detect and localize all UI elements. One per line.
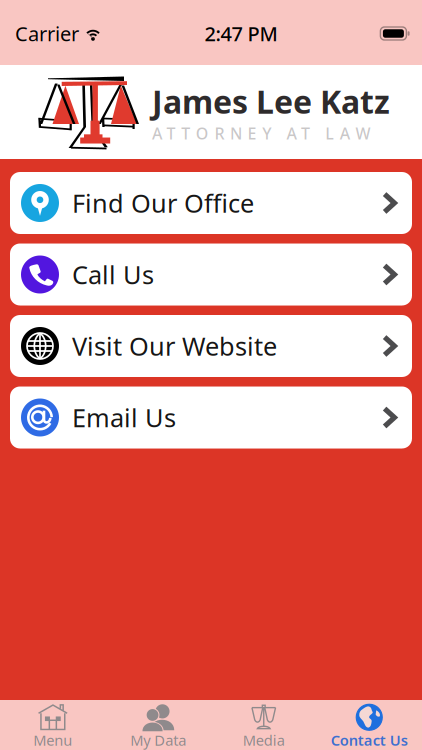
staticText: My Data	[130, 730, 186, 750]
staticText: Media	[243, 730, 285, 750]
staticText: James Lee Katz	[152, 80, 390, 123]
button[interactable]: Contact Us	[316, 700, 422, 750]
button[interactable]: Visit Our Website	[10, 315, 412, 377]
button[interactable]: Email Us	[10, 386, 412, 448]
staticText: Menu	[33, 730, 72, 750]
staticText: Visit Our Website	[72, 329, 277, 363]
button[interactable]: Call Us	[10, 243, 412, 305]
staticText: 2:47 PM	[204, 20, 277, 47]
staticText: Email Us	[72, 401, 176, 434]
button[interactable]: Menu	[0, 700, 105, 750]
button[interactable]: My Data	[105, 700, 211, 750]
staticText: ATTORNEY AT LAW	[152, 123, 370, 144]
staticText: Call Us	[72, 258, 154, 291]
staticText: Contact Us	[331, 730, 408, 750]
staticText: Find Our Office	[72, 186, 254, 220]
button[interactable]: Media	[211, 700, 316, 750]
staticText: Carrier	[15, 20, 79, 47]
button[interactable]: Find Our Office	[10, 172, 412, 234]
